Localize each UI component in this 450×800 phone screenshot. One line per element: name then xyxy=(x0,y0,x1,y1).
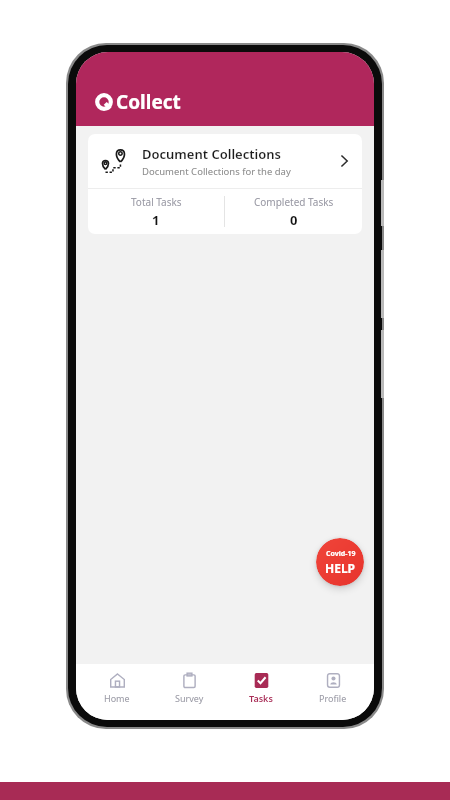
button[interactable]: Survey xyxy=(158,672,220,720)
other: Profile xyxy=(325,672,342,689)
button[interactable]: Covid-19 xyxy=(316,538,364,586)
staticText: HELP xyxy=(325,560,356,576)
staticText: Tasks xyxy=(249,692,273,704)
other: Tasks xyxy=(253,672,270,689)
staticText: Covid-19 xyxy=(326,549,356,559)
staticText: Survey xyxy=(175,692,204,704)
staticText: Collect xyxy=(116,89,181,115)
button[interactable]: Total Tasks xyxy=(88,189,224,234)
staticText: Profile xyxy=(319,692,347,704)
button[interactable]: Completed Tasks xyxy=(225,189,362,234)
staticText: Document Collections xyxy=(142,145,281,163)
other: Survey xyxy=(181,672,198,689)
button[interactable]: Home xyxy=(86,672,148,720)
staticText: Total Tasks xyxy=(131,195,182,209)
staticText: 0 xyxy=(290,211,298,229)
staticText: Home xyxy=(104,692,130,704)
button[interactable]: Profile xyxy=(302,672,364,720)
button[interactable]: Tasks xyxy=(230,672,292,720)
staticText: Completed Tasks xyxy=(254,195,334,209)
button[interactable]: Document Collections xyxy=(88,134,362,188)
staticText: Document Collections for the day xyxy=(142,165,291,178)
other: Home xyxy=(109,672,126,689)
staticText: 1 xyxy=(152,211,160,229)
